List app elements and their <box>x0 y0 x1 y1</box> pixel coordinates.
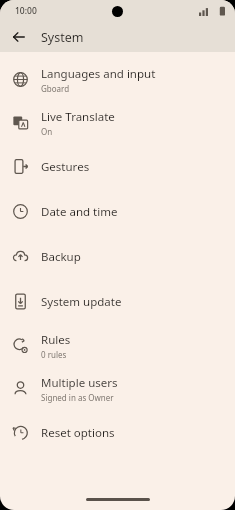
button[interactable]: Live Translate <box>0 101 235 144</box>
staticText: Gestures <box>41 159 90 175</box>
button[interactable]: Rules <box>0 324 235 367</box>
staticText: On <box>41 126 53 137</box>
staticText: 0 rules <box>41 349 67 360</box>
staticText: Backup <box>41 249 81 265</box>
staticText: System update <box>41 294 122 310</box>
staticText: 10:00 <box>15 5 37 17</box>
staticText: Signed in as Owner <box>41 392 114 403</box>
button[interactable]: Gestures <box>0 144 235 189</box>
staticText: System <box>41 29 84 46</box>
button[interactable]: Multiple users <box>0 367 235 410</box>
button[interactable]: Reset options <box>0 410 235 455</box>
staticText: Gboard <box>41 83 70 94</box>
staticText: Rules <box>41 332 71 348</box>
staticText: Reset options <box>41 425 115 441</box>
staticText: Live Translate <box>41 109 115 125</box>
staticText: Multiple users <box>41 375 118 391</box>
button[interactable]: Back <box>8 26 30 48</box>
staticText: Languages and input <box>41 66 156 82</box>
button[interactable]: Backup <box>0 234 235 279</box>
button[interactable]: Date and time <box>0 189 235 234</box>
button[interactable]: Languages and input <box>0 58 235 101</box>
staticText: Date and time <box>41 204 118 220</box>
button[interactable]: System update <box>0 279 235 324</box>
